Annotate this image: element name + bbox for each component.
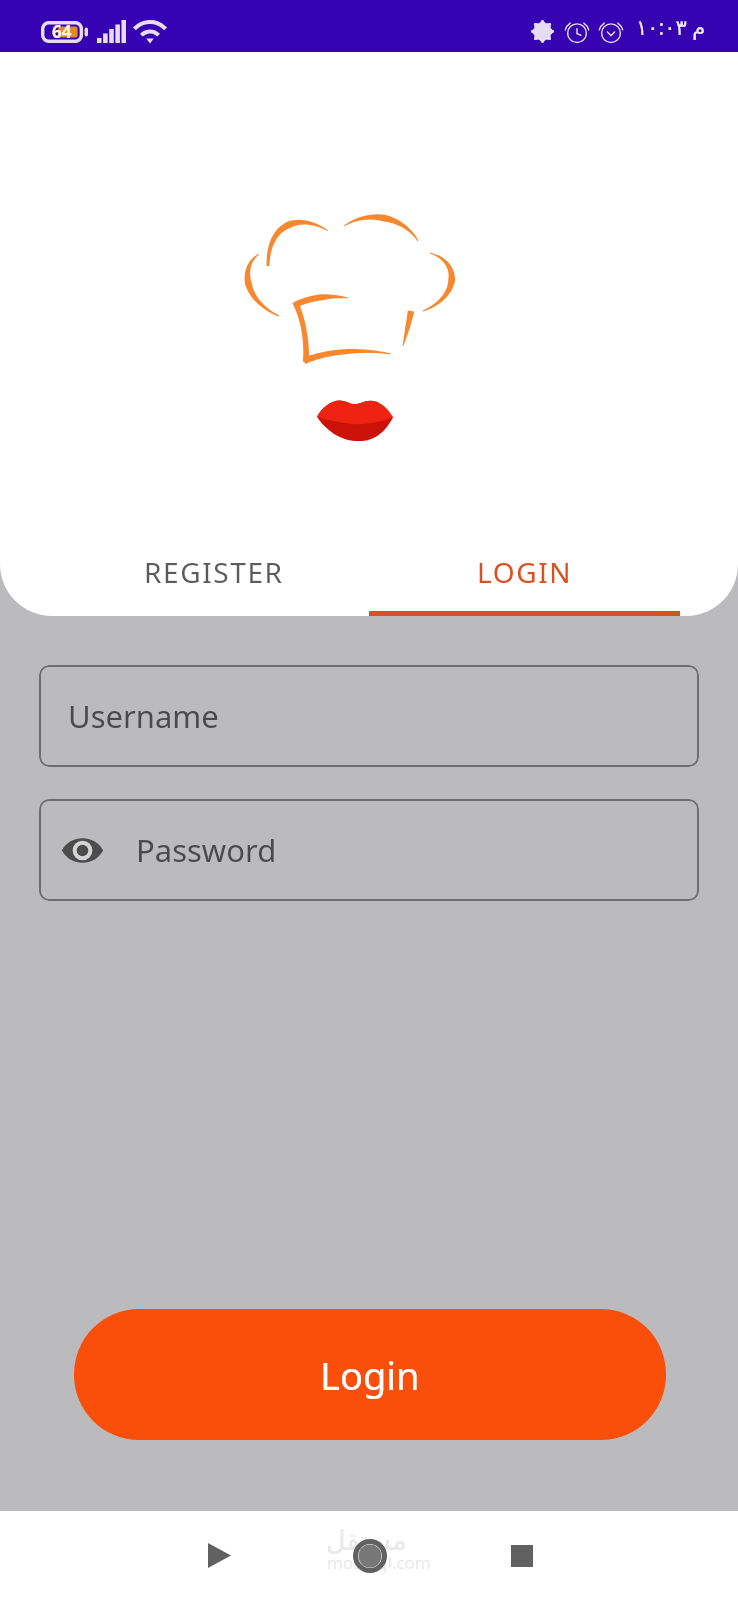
staticText: Username	[68, 695, 219, 737]
staticText: 64	[52, 20, 72, 42]
button[interactable]: Login	[74, 1309, 666, 1440]
staticText: LOGIN	[477, 553, 573, 591]
button[interactable]: LOGIN	[369, 524, 680, 620]
staticText: REGISTER	[144, 553, 284, 591]
staticText: Password	[136, 829, 277, 871]
staticText: مستقل	[326, 1525, 407, 1556]
button[interactable]: REGISTER	[58, 524, 369, 620]
button[interactable]: Username	[39, 665, 699, 767]
button[interactable]: Home	[322, 1511, 418, 1600]
staticText: Login	[320, 1349, 420, 1401]
button[interactable]: Show password	[53, 822, 112, 878]
staticText: م ١٠:٠٣	[636, 13, 706, 42]
button[interactable]: Recents	[474, 1511, 570, 1600]
staticText: mostaql.com	[327, 1551, 431, 1574]
button[interactable]: Show password	[39, 799, 699, 901]
button[interactable]: Back	[171, 1511, 267, 1600]
